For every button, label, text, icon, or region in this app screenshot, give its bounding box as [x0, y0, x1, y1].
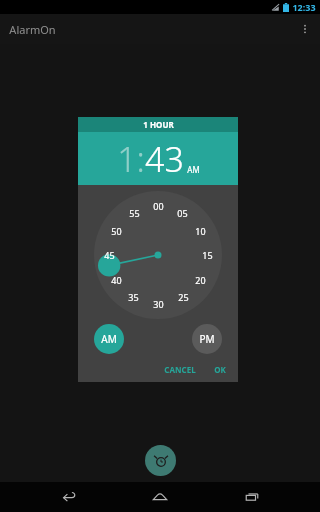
- staticText: 15: [202, 249, 213, 261]
- staticText: 05: [177, 207, 188, 219]
- staticText: 35: [128, 291, 139, 303]
- button[interactable]: Recents: [229, 482, 275, 512]
- staticText: AM: [101, 332, 117, 346]
- staticText: 1:: [117, 136, 145, 182]
- staticText: OK: [214, 364, 226, 375]
- button[interactable]: 43: [145, 136, 184, 182]
- staticText: AM: [187, 164, 200, 175]
- button[interactable]: 1:: [117, 136, 145, 182]
- staticText: 43: [145, 136, 184, 182]
- button[interactable]: AlarmOn: [0, 16, 65, 43]
- button[interactable]: AM: [94, 324, 124, 354]
- staticText: PM: [199, 332, 215, 346]
- button[interactable]: Add alarm: [145, 445, 176, 476]
- staticText: AlarmOn: [9, 22, 56, 37]
- staticText: 12:33: [292, 1, 316, 13]
- button[interactable]: Back: [46, 482, 92, 512]
- button[interactable]: OK: [210, 362, 230, 377]
- staticText: 20: [195, 274, 206, 286]
- button[interactable]: AM: [187, 164, 200, 175]
- button[interactable]: 00: [94, 191, 222, 319]
- staticText: CANCEL: [164, 364, 196, 375]
- staticText: 50: [111, 225, 122, 237]
- button[interactable]: CANCEL: [160, 362, 200, 377]
- staticText: 1 HOUR: [143, 119, 174, 130]
- button[interactable]: Home: [137, 482, 183, 512]
- staticText: 25: [178, 291, 189, 303]
- staticText: 40: [111, 274, 122, 286]
- staticText: 00: [153, 200, 164, 212]
- button[interactable]: PM: [192, 324, 222, 354]
- button[interactable]: More options: [290, 14, 320, 44]
- staticText: 55: [129, 207, 140, 219]
- staticText: 30: [153, 298, 164, 310]
- staticText: 45: [104, 249, 115, 261]
- staticText: 10: [195, 225, 206, 237]
